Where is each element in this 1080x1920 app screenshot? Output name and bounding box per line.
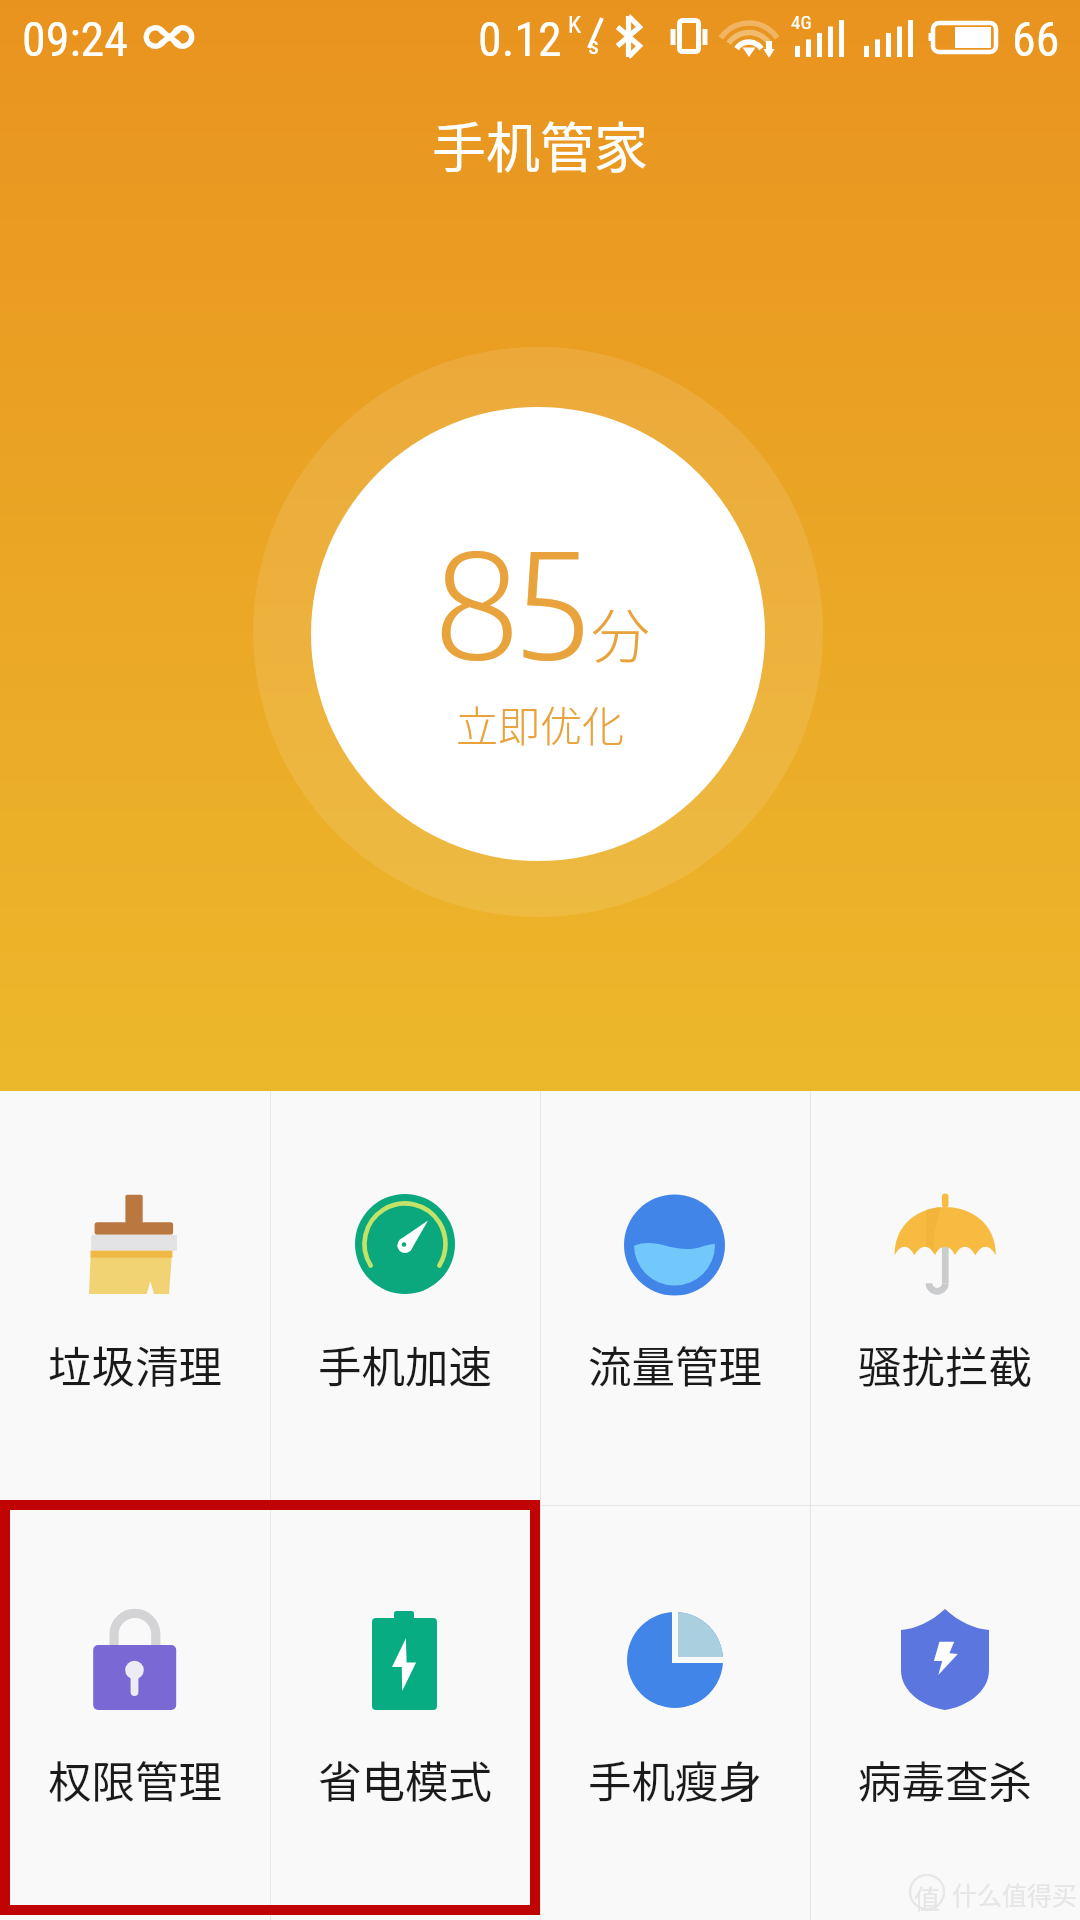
staticText: K bbox=[568, 11, 582, 39]
staticText: 手机加速 bbox=[318, 1333, 492, 1396]
staticText: 值 bbox=[914, 1879, 941, 1917]
staticText: 手机管家 bbox=[432, 105, 648, 183]
button[interactable]: 流量管理 bbox=[540, 1091, 810, 1505]
button[interactable]: 手机加速 bbox=[270, 1091, 540, 1505]
staticText: 手机瘦身 bbox=[588, 1748, 762, 1811]
button[interactable]: 垃圾清理 bbox=[0, 1091, 270, 1505]
staticText: 垃圾清理 bbox=[48, 1333, 222, 1396]
staticText: 病毒查杀 bbox=[858, 1748, 1032, 1811]
staticText: 09:24 bbox=[22, 11, 128, 67]
staticText: 什么值得买 bbox=[952, 1876, 1078, 1912]
button[interactable]: 权限管理 bbox=[0, 1506, 270, 1920]
staticText: 省电模式 bbox=[318, 1748, 492, 1811]
staticText: 66 bbox=[1012, 11, 1060, 67]
staticText: 骚扰拦截 bbox=[858, 1333, 1032, 1396]
staticText: 立即优化 bbox=[456, 693, 625, 754]
staticText: 4G bbox=[791, 11, 812, 33]
staticText: s bbox=[588, 32, 599, 60]
button[interactable]: 骚扰拦截 bbox=[810, 1091, 1080, 1505]
button[interactable]: 省电模式 bbox=[270, 1506, 540, 1920]
button[interactable]: 病毒查杀 bbox=[810, 1506, 1080, 1920]
staticText: 权限管理 bbox=[48, 1748, 222, 1811]
button[interactable]: 手机瘦身 bbox=[540, 1506, 810, 1920]
button[interactable]: 85 bbox=[311, 407, 765, 861]
staticText: 流量管理 bbox=[588, 1333, 762, 1396]
staticText: 0.12 bbox=[478, 11, 562, 67]
staticText: 分 bbox=[591, 590, 651, 675]
staticText: 85 bbox=[435, 510, 587, 692]
